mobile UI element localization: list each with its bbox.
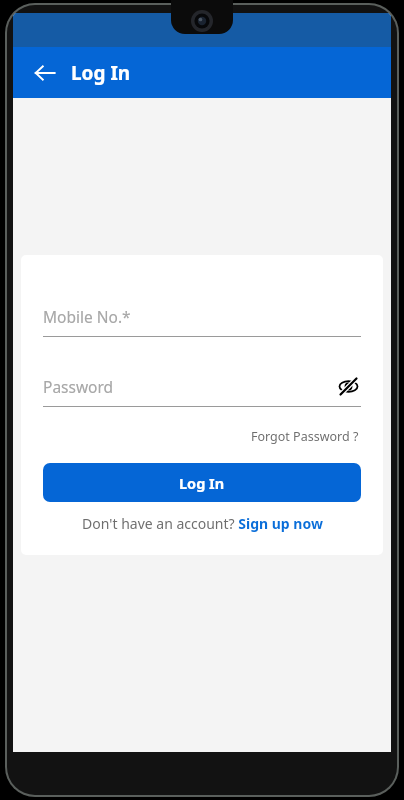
button[interactable]: Mobile No.* <box>43 303 361 329</box>
staticText: Password <box>43 376 114 397</box>
staticText: Log In <box>179 473 225 493</box>
staticText: Don't have an account? Sign up now <box>82 514 323 533</box>
button[interactable]: Password <box>43 373 361 399</box>
button[interactable]: Show password <box>335 373 361 399</box>
staticText: Mobile No.* <box>43 306 131 327</box>
button[interactable]: Don't have an account? Sign up now <box>43 514 361 533</box>
staticText: Forgot Password ? <box>251 428 359 445</box>
button[interactable]: Forgot Password ? <box>249 425 361 448</box>
button[interactable]: Log In <box>43 463 361 502</box>
button[interactable]: Back <box>27 55 63 91</box>
staticText: Log In <box>71 60 131 86</box>
